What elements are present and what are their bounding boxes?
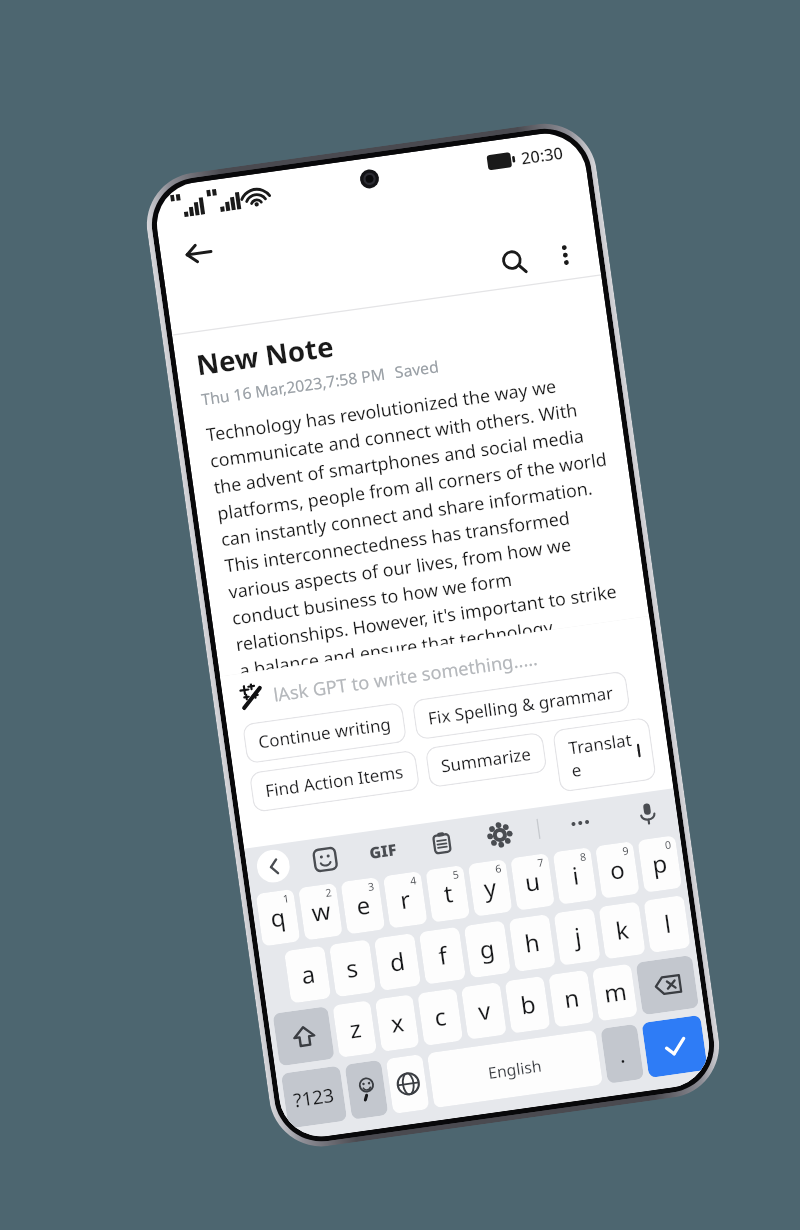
staticText: 20:30 xyxy=(520,141,565,169)
button[interactable]: Translate xyxy=(552,717,657,793)
button[interactable]: More xyxy=(562,804,599,841)
button[interactable]: Search xyxy=(484,234,544,291)
staticText: 7 xyxy=(536,855,545,871)
staticText: Find Action Items xyxy=(264,760,405,802)
button[interactable]: Enter xyxy=(641,1015,708,1078)
staticText: h xyxy=(522,926,542,960)
button[interactable]: a xyxy=(284,946,331,1004)
staticText: 1 xyxy=(282,891,290,907)
staticText: l xyxy=(662,907,673,941)
staticText: GIF xyxy=(368,839,398,864)
staticText: Technology has revolutionized the way we… xyxy=(205,368,629,674)
button[interactable]: Fix Spelling & grammar xyxy=(412,670,631,740)
button[interactable]: j xyxy=(553,908,601,966)
staticText: 4 xyxy=(409,873,418,889)
staticText: c xyxy=(432,1000,449,1034)
button[interactable]: f xyxy=(419,927,466,985)
button[interactable]: q xyxy=(256,889,300,946)
button[interactable]: z xyxy=(332,1000,377,1058)
button[interactable]: ?123 xyxy=(281,1065,347,1129)
staticText: . xyxy=(617,1040,627,1069)
staticText: 8 xyxy=(579,849,587,865)
button[interactable]: More options xyxy=(537,227,594,283)
staticText: g xyxy=(478,932,497,967)
staticText: n xyxy=(562,981,582,1016)
staticText: b xyxy=(518,987,538,1022)
staticText: Thu 16 Mar,2023,7:58 PM xyxy=(200,363,386,410)
staticText: w xyxy=(309,894,333,929)
button[interactable]: Settings xyxy=(482,817,516,851)
button[interactable]: i xyxy=(553,847,597,905)
button[interactable]: Back xyxy=(167,222,230,284)
staticText: lAsk GPT to write something..... xyxy=(272,645,540,707)
button[interactable]: p xyxy=(637,835,682,893)
staticText: 9 xyxy=(621,843,630,859)
staticText: i xyxy=(570,859,581,892)
staticText: Translate xyxy=(567,727,642,782)
staticText: New Note xyxy=(194,326,336,383)
button[interactable]: lAsk GPT to write something..... xyxy=(236,629,640,713)
button[interactable]: s xyxy=(329,939,376,997)
button[interactable]: t xyxy=(425,865,470,923)
button[interactable]: Emoji xyxy=(344,1060,388,1120)
staticText: j xyxy=(572,920,583,953)
staticText: e xyxy=(354,888,373,923)
staticText: u xyxy=(523,865,542,899)
staticText: x xyxy=(389,1006,407,1040)
staticText: Fix Spelling & grammar xyxy=(427,681,616,730)
staticText: 6 xyxy=(494,861,502,877)
button[interactable]: w xyxy=(298,883,343,941)
button[interactable]: Shift xyxy=(272,1006,335,1066)
button[interactable]: GIF xyxy=(365,836,401,867)
staticText: z xyxy=(347,1012,363,1046)
staticText: 5 xyxy=(452,867,460,883)
button[interactable]: n xyxy=(548,970,594,1027)
staticText: 3 xyxy=(367,879,375,895)
button[interactable]: Find Action Items xyxy=(249,750,420,813)
staticText: f xyxy=(436,939,450,972)
button[interactable]: Continue writing xyxy=(242,702,407,764)
staticText: 2 xyxy=(324,885,333,901)
button[interactable]: Clipboard xyxy=(425,825,459,860)
button[interactable]: g xyxy=(464,920,511,978)
button[interactable]: English xyxy=(427,1030,603,1108)
button[interactable]: Backspace xyxy=(636,955,699,1015)
staticText: y xyxy=(482,871,499,905)
button[interactable]: y xyxy=(468,859,512,917)
button[interactable]: u xyxy=(510,853,555,911)
staticText: k xyxy=(614,913,632,947)
button[interactable]: k xyxy=(598,901,646,959)
button[interactable]: l xyxy=(643,895,691,953)
staticText: s xyxy=(344,951,361,985)
staticText: d xyxy=(388,945,407,979)
button[interactable]: Change language xyxy=(386,1054,430,1114)
staticText: r xyxy=(398,883,412,917)
staticText: a xyxy=(299,957,317,992)
button[interactable]: x xyxy=(375,994,420,1052)
button[interactable]: Summarize xyxy=(425,732,548,788)
staticText: p xyxy=(650,847,670,881)
staticText: Saved xyxy=(393,356,440,383)
button[interactable]: v xyxy=(461,982,507,1040)
staticText: o xyxy=(608,853,627,887)
button[interactable]: d xyxy=(374,933,421,991)
button[interactable]: Back xyxy=(255,848,292,885)
button[interactable]: . xyxy=(600,1024,644,1084)
button[interactable]: e xyxy=(340,877,385,935)
staticText: Continue writing xyxy=(257,712,392,753)
staticText: Summarize xyxy=(440,742,533,777)
button[interactable]: h xyxy=(509,914,556,972)
button[interactable]: Stickers xyxy=(307,842,342,876)
button[interactable]: c xyxy=(417,988,463,1046)
button[interactable]: m xyxy=(592,964,638,1021)
button[interactable]: Voice input xyxy=(629,795,666,832)
button[interactable]: o xyxy=(595,841,640,899)
staticText: ?123 xyxy=(292,1082,336,1112)
staticText: m xyxy=(602,975,629,1010)
staticText: English xyxy=(487,1055,543,1084)
staticText: t xyxy=(442,877,455,911)
staticText: v xyxy=(476,994,493,1028)
button[interactable]: r xyxy=(383,871,428,929)
button[interactable]: b xyxy=(504,976,550,1034)
staticText: 0 xyxy=(664,837,672,853)
